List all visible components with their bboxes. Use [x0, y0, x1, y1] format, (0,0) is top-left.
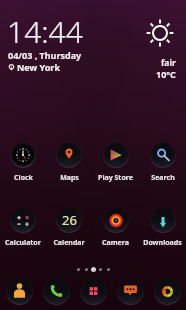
button[interactable]: Phone	[38, 278, 75, 305]
button[interactable]: Calculator	[0, 207, 46, 248]
button[interactable]: Apps	[75, 278, 112, 305]
button[interactable]: 26	[46, 207, 92, 248]
button[interactable]: Downloads	[139, 207, 186, 248]
staticText: New York	[17, 61, 60, 73]
staticText: 26	[62, 211, 77, 229]
button[interactable]: Maps	[46, 142, 92, 183]
staticText: Calendar	[53, 238, 85, 248]
staticText: Clock	[14, 173, 33, 183]
button[interactable]: Contacts	[0, 278, 38, 305]
button[interactable]: Search	[139, 142, 186, 183]
button[interactable]: Gallery	[149, 278, 186, 305]
button[interactable]: 14:44	[0, 0, 186, 95]
button[interactable]: Clock	[0, 142, 46, 183]
staticText: fair	[161, 57, 176, 69]
staticText: Search	[151, 173, 175, 183]
button[interactable]: Messages	[112, 278, 149, 305]
staticText: Calculator	[5, 238, 41, 248]
staticText: 14:44	[7, 11, 83, 52]
button[interactable]: Play Store	[92, 142, 139, 183]
staticText: Maps	[60, 173, 79, 183]
staticText: Downloads	[143, 238, 182, 248]
button[interactable]: Camera	[92, 207, 139, 248]
staticText: Play Store	[98, 173, 133, 183]
staticText: Camera	[102, 238, 129, 248]
staticText: 10°C	[156, 68, 176, 80]
staticText: 04/03 , Thursday	[8, 49, 82, 61]
